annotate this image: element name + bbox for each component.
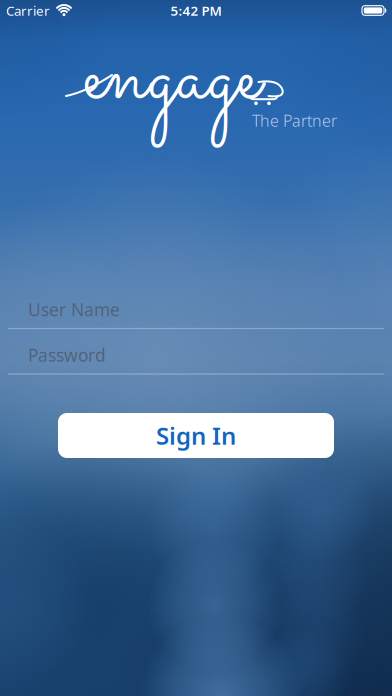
staticText: 5:42 PM — [170, 2, 221, 19]
staticText: Sign In — [156, 420, 236, 451]
staticText: Password — [28, 343, 106, 366]
staticText: User Name — [28, 298, 120, 321]
staticText: engage — [83, 11, 261, 147]
button[interactable]: User Name — [8, 290, 384, 330]
button[interactable]: Password — [8, 335, 384, 375]
staticText: Carrier — [6, 2, 50, 19]
button[interactable]: Sign In — [58, 413, 334, 458]
staticText: The Partner — [252, 110, 337, 131]
